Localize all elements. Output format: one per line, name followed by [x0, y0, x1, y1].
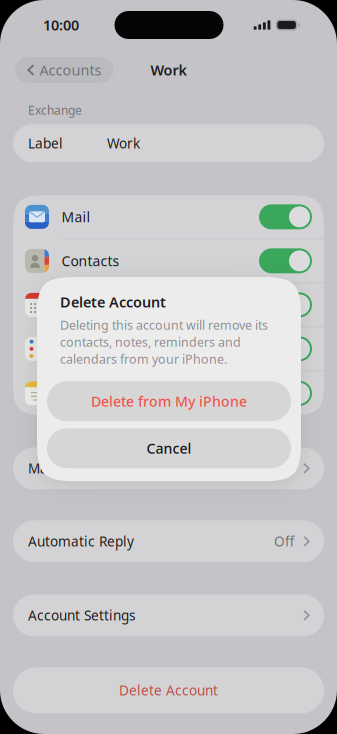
button[interactable]: Automatic Reply	[13, 520, 324, 562]
staticText: Mail	[61, 207, 90, 226]
staticText: Exchange	[28, 102, 82, 118]
staticText: 10:00	[43, 15, 79, 35]
staticText: Delete Account	[119, 681, 218, 700]
staticText: Automatic Reply	[28, 532, 134, 551]
button[interactable]: Contacts	[13, 239, 324, 283]
staticText: Deleting this account will remove its co…	[60, 317, 268, 367]
button[interactable]: Calendars	[13, 283, 324, 327]
staticText: Label	[28, 134, 63, 153]
button[interactable]: Reminders	[13, 327, 324, 371]
staticText: Work	[107, 134, 140, 153]
staticText: Notes	[61, 384, 100, 403]
button[interactable]: Notes	[13, 371, 324, 415]
staticText: Cancel	[146, 439, 191, 458]
staticText: Work	[150, 60, 186, 80]
staticText: Off	[274, 532, 294, 551]
staticText: Delete from My iPhone	[91, 392, 247, 411]
staticText: Mail Days to Sync	[28, 459, 142, 478]
staticText: No Limit	[239, 459, 294, 478]
button[interactable]: Account Settings	[13, 594, 324, 636]
staticText: Accounts	[40, 60, 102, 80]
button[interactable]: Label	[13, 124, 324, 162]
button[interactable]: Mail Days to Sync	[13, 447, 324, 489]
button[interactable]: Delete Account	[13, 667, 324, 713]
button[interactable]: Mail	[13, 195, 324, 239]
button[interactable]: Cancel	[47, 428, 291, 468]
staticText: Calendars	[61, 295, 129, 314]
button[interactable]: Delete from My iPhone	[47, 381, 291, 421]
button[interactable]: Accounts	[15, 57, 114, 83]
staticText: Reminders	[61, 339, 134, 358]
staticText: Contacts	[61, 251, 119, 270]
staticText: Account Settings	[28, 606, 136, 625]
staticText: Delete Account	[60, 292, 166, 312]
